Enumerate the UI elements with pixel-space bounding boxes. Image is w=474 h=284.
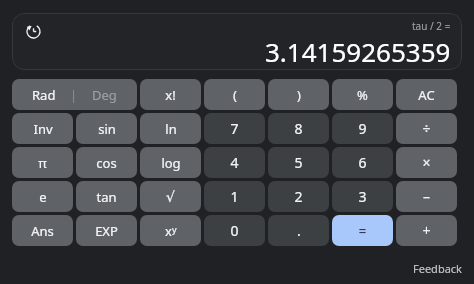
staticText: Rad	[32, 86, 56, 104]
staticText: x	[165, 222, 172, 240]
button[interactable]: ln	[140, 113, 201, 144]
button[interactable]: =	[332, 215, 393, 246]
button[interactable]: e	[12, 181, 73, 212]
staticText: =	[358, 221, 367, 240]
staticText: –	[423, 187, 430, 206]
staticText: 0	[230, 221, 239, 240]
button[interactable]: log	[140, 147, 201, 178]
staticText: 9	[358, 119, 367, 138]
button[interactable]: AC	[396, 79, 457, 110]
staticText: cos	[96, 154, 117, 172]
button[interactable]: 0	[204, 215, 265, 246]
button[interactable]: 4	[204, 147, 265, 178]
button[interactable]: Inv	[12, 113, 73, 144]
button[interactable]: √	[140, 181, 201, 212]
staticText: ×	[422, 153, 431, 172]
staticText: 1	[230, 187, 239, 206]
staticText: ln	[165, 120, 177, 138]
button[interactable]: Ans	[12, 215, 73, 246]
staticText: e	[39, 188, 47, 206]
button[interactable]: Feedback	[411, 259, 464, 278]
button[interactable]: ×	[396, 147, 457, 178]
button[interactable]: 1	[204, 181, 265, 212]
staticText: tan	[96, 188, 117, 206]
button[interactable]: History	[23, 21, 43, 41]
staticText: x!	[165, 86, 176, 104]
staticText: Ans	[31, 222, 54, 240]
staticText: Inv	[33, 120, 53, 138]
staticText: 5	[294, 153, 303, 172]
staticText: (	[233, 86, 237, 104]
button[interactable]: %	[332, 79, 393, 110]
button[interactable]: 7	[204, 113, 265, 144]
button[interactable]: Rad	[12, 79, 137, 110]
button[interactable]: 3	[332, 181, 393, 212]
staticText: log	[161, 154, 181, 172]
button[interactable]: tan	[76, 181, 137, 212]
staticText: sin	[98, 120, 116, 138]
staticText: ÷	[422, 119, 431, 138]
button[interactable]: (	[204, 79, 265, 110]
staticText: Deg	[92, 86, 117, 104]
button[interactable]: π	[12, 147, 73, 178]
staticText: AC	[418, 86, 435, 104]
button[interactable]: .	[268, 215, 329, 246]
staticText: %	[357, 86, 368, 104]
staticText: Feedback	[413, 261, 462, 276]
staticText: 3	[358, 187, 367, 206]
staticText: tau / 2 =	[412, 19, 451, 33]
staticText: .	[297, 221, 301, 240]
button[interactable]: sin	[76, 113, 137, 144]
button[interactable]: 2	[268, 181, 329, 212]
button[interactable]: 9	[332, 113, 393, 144]
staticText: π	[38, 154, 47, 172]
button[interactable]: x!	[140, 79, 201, 110]
staticText: √	[166, 189, 175, 205]
staticText: 3.14159265359	[265, 34, 451, 69]
button[interactable]: x	[140, 215, 201, 246]
button[interactable]: EXP	[76, 215, 137, 246]
button[interactable]: 6	[332, 147, 393, 178]
staticText: 6	[358, 153, 367, 172]
button[interactable]: +	[396, 215, 457, 246]
button[interactable]: 8	[268, 113, 329, 144]
staticText: EXP	[95, 222, 118, 240]
button[interactable]: ÷	[396, 113, 457, 144]
button[interactable]: cos	[76, 147, 137, 178]
button[interactable]: 5	[268, 147, 329, 178]
staticText: )	[297, 86, 301, 104]
staticText: 8	[294, 119, 303, 138]
button[interactable]: –	[396, 181, 457, 212]
staticText: 2	[294, 187, 303, 206]
staticText: |	[70, 86, 78, 104]
staticText: +	[422, 221, 431, 240]
staticText: y	[172, 223, 177, 235]
button[interactable]: )	[268, 79, 329, 110]
staticText: 4	[230, 153, 239, 172]
staticText: 7	[230, 119, 239, 138]
